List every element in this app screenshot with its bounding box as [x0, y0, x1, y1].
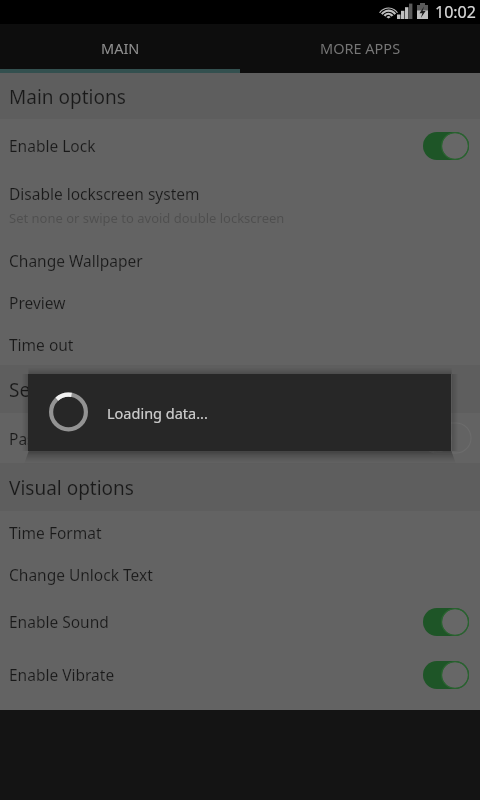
staticText: MAIN: [101, 38, 140, 58]
other: Wi-Fi, cellular signal, battery charging: [0, 0, 480, 24]
staticText: Change Wallpaper: [9, 250, 143, 271]
staticText: Visual options: [9, 475, 134, 501]
button[interactable]: Enable Sound: [0, 595, 480, 648]
button[interactable]: MAIN: [0, 26, 240, 69]
button[interactable]: Password, off: [423, 424, 469, 452]
button[interactable]: MORE APPS: [240, 26, 480, 69]
staticText: Security options: [9, 377, 153, 403]
button[interactable]: Enable Lock: [0, 119, 480, 172]
staticText: Main options: [9, 84, 126, 110]
button[interactable]: Enable Lock, on: [423, 132, 469, 160]
staticText: Change Unlock Text: [9, 564, 153, 585]
button[interactable]: Enable Vibrate: [0, 648, 480, 701]
staticText: Time out: [9, 334, 74, 355]
button[interactable]: Change Unlock Text: [0, 553, 480, 595]
button[interactable]: Disable lockscreen system: [0, 172, 480, 239]
staticText: Enable Vibrate: [9, 664, 115, 685]
staticText: MORE APPS: [320, 38, 401, 58]
staticText: Time Format: [9, 522, 102, 543]
button[interactable]: Time Format: [0, 511, 480, 553]
button[interactable]: Change Wallpaper: [0, 239, 480, 281]
staticText: Loading data...: [107, 403, 208, 423]
staticText: Enable Lock: [9, 135, 96, 156]
button[interactable]: Enable Sound, on: [423, 608, 469, 636]
button[interactable]: Password: [0, 413, 480, 463]
staticText: Set none or swipe to avoid double locksc…: [9, 209, 285, 227]
staticText: Password: [9, 428, 80, 449]
staticText: Disable lockscreen system: [9, 183, 200, 204]
staticText: 10:02: [435, 1, 476, 23]
button[interactable]: Time out: [0, 323, 480, 365]
button[interactable]: Enable Vibrate, on: [423, 661, 469, 689]
button[interactable]: Preview: [0, 281, 480, 323]
staticText: Preview: [9, 292, 66, 313]
staticText: Enable Sound: [9, 611, 109, 632]
